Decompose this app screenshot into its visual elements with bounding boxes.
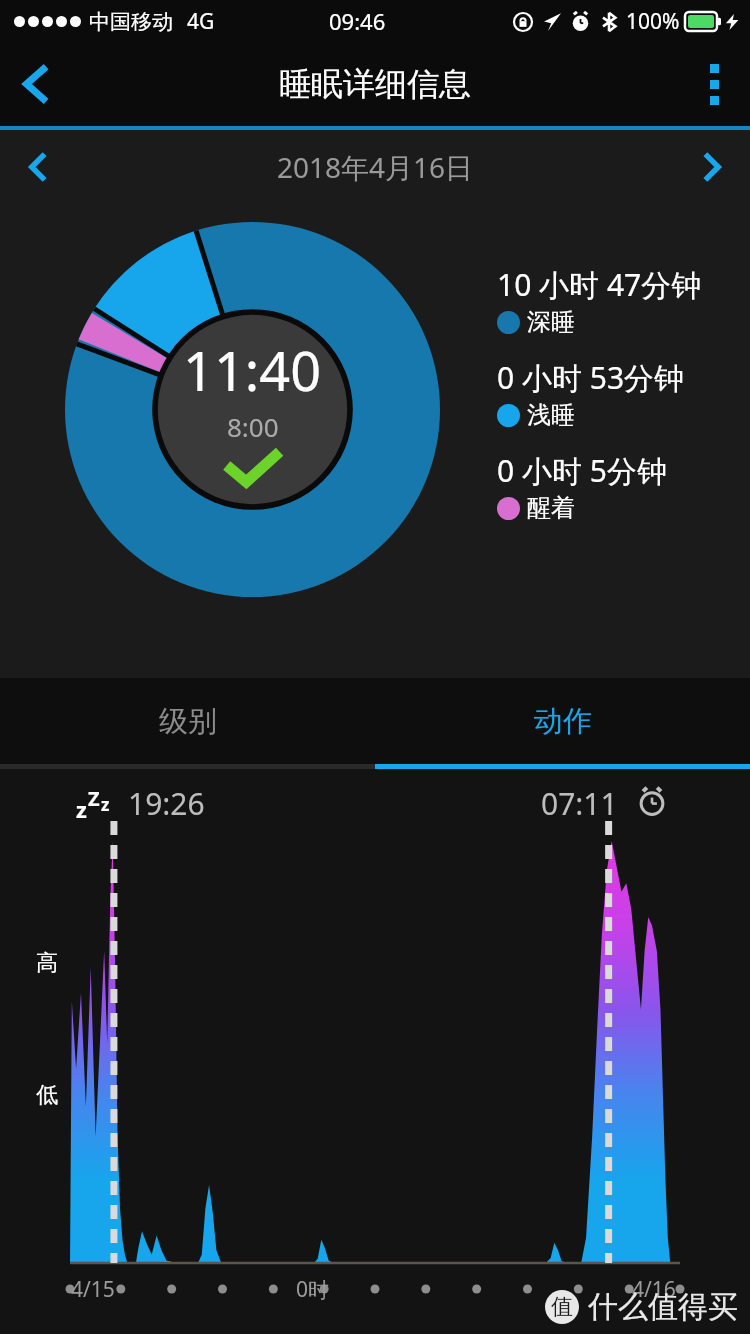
staticText: 11:40 [183, 333, 322, 407]
button[interactable]: 动作 [375, 678, 750, 764]
staticText: 09:46 [329, 6, 386, 36]
staticText: 0时 [296, 1275, 330, 1304]
button[interactable]: 级别 [0, 678, 375, 764]
button[interactable]: Next day [674, 130, 750, 204]
staticText: 8:00 [227, 409, 279, 444]
staticText: 4/15 [71, 1275, 115, 1304]
staticText: 100% [626, 7, 680, 36]
staticText: 动作 [534, 703, 592, 740]
staticText: 什么值得买 [588, 1288, 738, 1326]
staticText: z [101, 793, 110, 816]
staticText: Z [88, 785, 100, 812]
staticText: 4G [187, 7, 215, 36]
staticText: 醒着 [527, 493, 575, 523]
staticText: 低 [36, 1081, 58, 1109]
staticText: 0 小时 53分钟 [497, 357, 685, 398]
staticText: z [76, 794, 87, 824]
staticText: 中国移动 [89, 9, 173, 35]
button[interactable]: Previous day [0, 130, 76, 204]
staticText: 浅睡 [527, 400, 575, 430]
staticText: 19:26 [128, 783, 205, 824]
staticText: 睡眠详细信息 [279, 64, 471, 104]
staticText: 深睡 [527, 307, 575, 337]
staticText: 级别 [159, 703, 217, 740]
staticText: 2018年4月16日 [277, 148, 474, 186]
staticText: 0 小时 5分钟 [497, 450, 667, 491]
staticText: 高 [36, 949, 58, 977]
staticText: 值 [551, 1293, 573, 1321]
staticText: 4/16 [632, 1275, 676, 1304]
other: Alarm [636, 785, 668, 817]
staticText: 07:11 [541, 783, 618, 824]
button[interactable]: More options [678, 48, 750, 120]
button[interactable]: Back [0, 48, 72, 120]
staticText: 10 小时 47分钟 [497, 264, 702, 305]
